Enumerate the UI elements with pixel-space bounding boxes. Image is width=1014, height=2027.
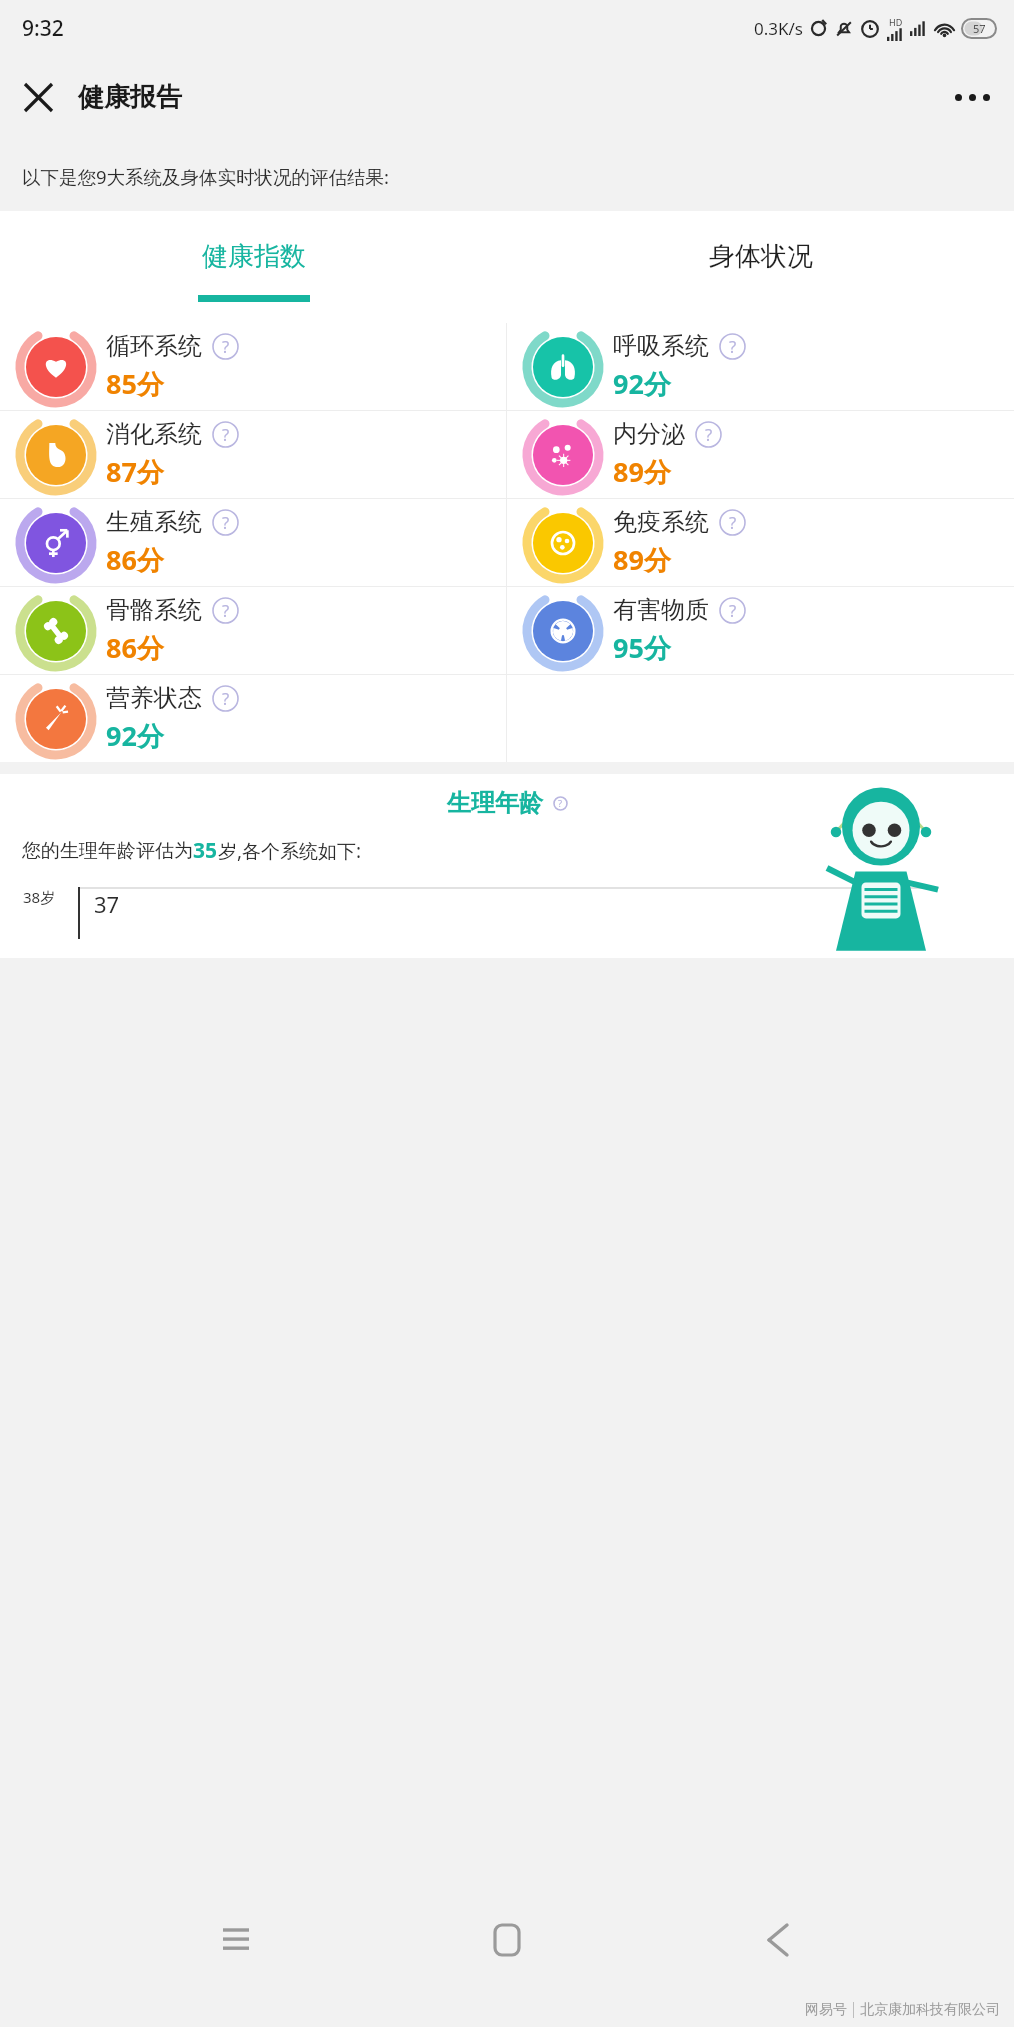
staticText: 生殖系统 (106, 507, 202, 537)
staticText: ? (729, 335, 737, 358)
staticText: ? (558, 797, 563, 810)
staticText: 0.3K/s (754, 17, 803, 40)
staticText: 健康报告 (78, 81, 182, 114)
staticText: 健康指数 (202, 240, 306, 273)
staticText: ? (222, 423, 230, 446)
button[interactable]: 消化系统 (0, 411, 506, 498)
staticText: 37 (94, 889, 120, 919)
staticText: 92分 (613, 365, 671, 402)
button[interactable]: Close (12, 71, 64, 123)
button[interactable]: 呼吸系统 (507, 323, 1014, 410)
staticText: ? (222, 335, 230, 358)
staticText: 89分 (613, 541, 671, 578)
staticText: 92分 (106, 717, 164, 754)
staticText: ? (222, 599, 230, 622)
staticText: HD (889, 16, 903, 28)
button[interactable]: 营养状态 (0, 675, 506, 762)
staticText: 营养状态 (106, 683, 202, 713)
staticText: 38岁 (23, 887, 56, 907)
button[interactable]: Home (472, 1905, 542, 1975)
staticText: 有害物质 (613, 595, 709, 625)
staticText: 免疫系统 (613, 507, 709, 537)
button[interactable]: 骨骼系统 (0, 587, 506, 674)
staticText: 呼吸系统 (613, 331, 709, 361)
button[interactable]: 内分泌 (507, 411, 1014, 498)
button[interactable]: Back (743, 1905, 813, 1975)
staticText: 北京康加科技有限公司 (860, 2001, 1000, 2019)
staticText: 生理年龄 (447, 788, 543, 818)
staticText: 95分 (613, 629, 671, 666)
button[interactable]: 身体状况 (507, 211, 1014, 323)
staticText: ? (222, 511, 230, 534)
button[interactable]: 循环系统 (0, 323, 506, 410)
staticText: 86分 (106, 629, 164, 666)
staticText: 9:32 (22, 14, 64, 43)
staticText: 85分 (106, 365, 164, 402)
staticText: 57 (973, 21, 986, 36)
staticText: 身体状况 (709, 240, 813, 273)
staticText: 35 (193, 836, 218, 865)
button[interactable]: 健康指数 (0, 211, 507, 323)
button[interactable]: Recent apps (201, 1905, 271, 1975)
staticText: ? (705, 423, 713, 446)
staticText: 89分 (613, 453, 671, 490)
staticText: 循环系统 (106, 331, 202, 361)
staticText: 岁,各个系统如下: (218, 838, 362, 864)
button[interactable]: 有害物质 (507, 587, 1014, 674)
staticText: 以下是您9大系统及身体实时状况的评估结果: (22, 164, 390, 189)
staticText: 87分 (106, 453, 164, 490)
button[interactable]: 生殖系统 (0, 499, 506, 586)
button[interactable]: More options (944, 69, 1000, 125)
staticText: ? (729, 511, 737, 534)
staticText: 您的生理年龄评估为 (22, 839, 193, 863)
staticText: 内分泌 (613, 419, 685, 449)
staticText: ? (729, 599, 737, 622)
staticText: 骨骼系统 (106, 595, 202, 625)
staticText: 网易号 (805, 2001, 847, 2019)
staticText: 消化系统 (106, 419, 202, 449)
staticText: 86分 (106, 541, 164, 578)
staticText: ? (222, 687, 230, 710)
button[interactable]: 免疫系统 (507, 499, 1014, 586)
